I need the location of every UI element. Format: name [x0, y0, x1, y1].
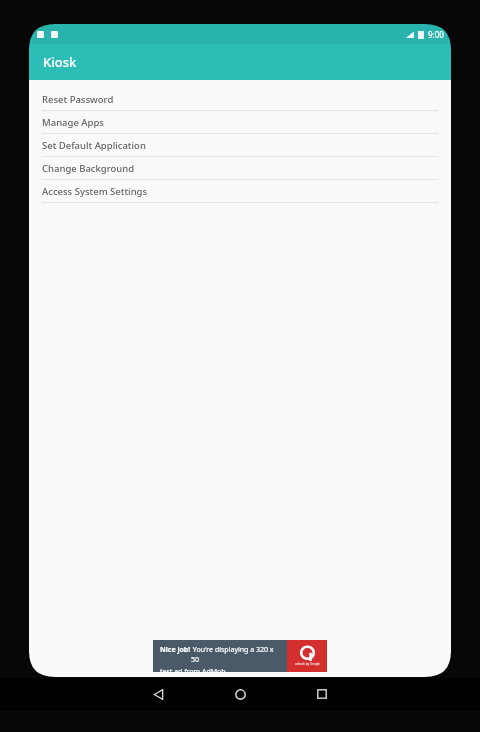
staticText: Set Default Application [42, 139, 146, 152]
button[interactable]: Access System Settings [29, 180, 451, 203]
staticText: Manage Apps [42, 116, 104, 129]
staticText: test ad from AdMob. [160, 667, 228, 672]
button[interactable]: Recent apps [294, 678, 350, 710]
button[interactable]: Change Background [29, 157, 451, 180]
staticText: Nice job! [160, 645, 191, 655]
button[interactable]: Set Default Application [29, 134, 451, 157]
staticText: 9:00 [428, 29, 444, 40]
staticText: Change Background [42, 162, 135, 175]
staticText: Reset Password [42, 93, 114, 106]
staticText: You're displaying a 320 x 50 [191, 645, 283, 665]
button[interactable]: Nice job! [153, 640, 327, 672]
button[interactable]: Back [130, 678, 186, 710]
staticText: Kiosk [43, 53, 77, 71]
staticText: admob by Google [295, 662, 320, 666]
other: AdMob [287, 640, 327, 672]
staticText: Access System Settings [42, 185, 148, 198]
button[interactable]: Manage Apps [29, 111, 451, 134]
button[interactable]: Home [212, 678, 268, 710]
button[interactable]: Reset Password [29, 88, 451, 111]
